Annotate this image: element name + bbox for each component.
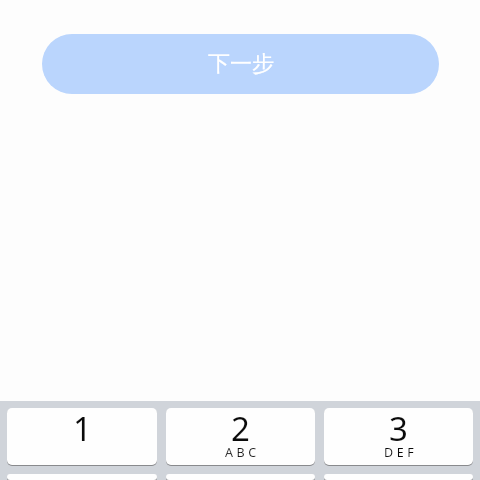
button[interactable]: 4 [7,474,157,480]
button[interactable]: 1 [7,408,157,465]
staticText: 1 [73,408,92,451]
staticText: 3 [389,408,408,451]
staticText: DEF [384,444,418,461]
staticText: 下一步 [208,50,274,78]
other: Numeric keypad [0,401,480,480]
button[interactable]: 5 [166,474,315,480]
button[interactable]: 下一步 [42,34,439,94]
button[interactable]: 2 [166,408,315,465]
staticText: ABC [225,444,260,461]
button[interactable]: 3 [324,408,473,465]
button[interactable]: 6 [324,474,473,480]
staticText: 2 [231,408,250,451]
